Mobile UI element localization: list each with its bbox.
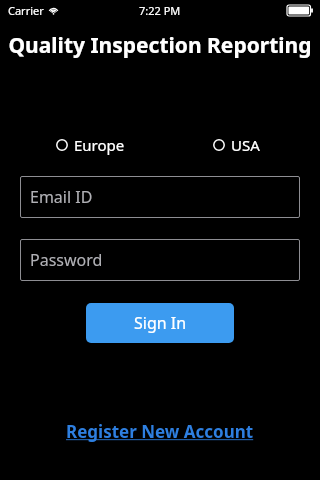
button[interactable]: Password	[20, 239, 300, 281]
button[interactable]: Email ID	[20, 176, 300, 218]
button[interactable]: Europe	[54, 133, 127, 157]
staticText: 7:22 PM	[139, 3, 181, 18]
staticText: Email ID	[30, 186, 93, 208]
staticText: Password	[30, 249, 103, 271]
staticText: Quality Inspection Reporting	[0, 31, 320, 60]
staticText: Register New Account	[66, 420, 254, 443]
staticText: Europe	[74, 135, 125, 155]
staticText: Sign In	[134, 312, 187, 334]
staticText: USA	[231, 135, 260, 155]
staticText: Carrier	[8, 3, 44, 18]
button[interactable]: Sign In	[86, 303, 234, 343]
button[interactable]: USA	[211, 133, 262, 157]
button[interactable]: Register New Account	[60, 417, 260, 446]
